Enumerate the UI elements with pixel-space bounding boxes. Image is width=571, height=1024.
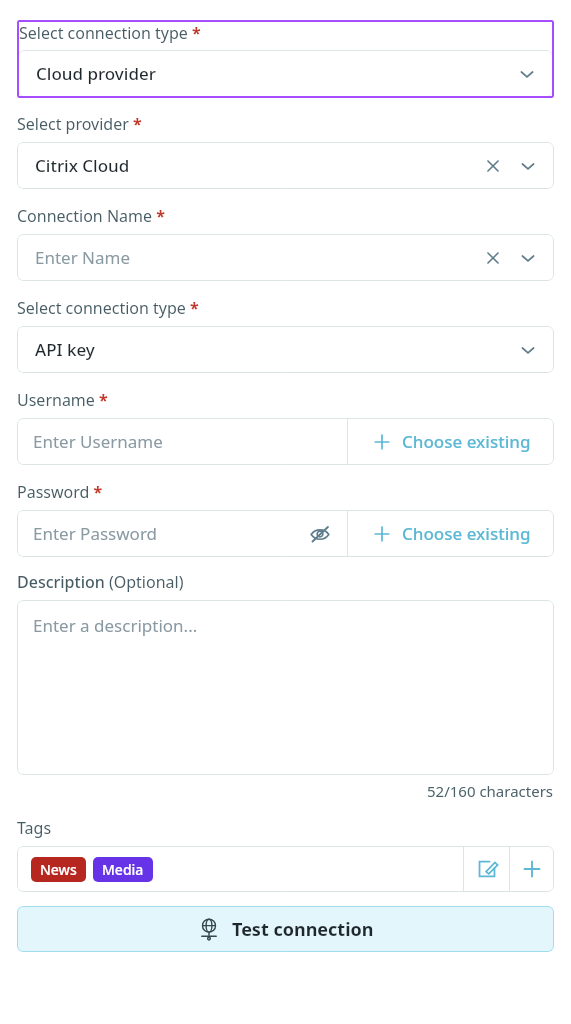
button[interactable]: Enter a description... [17, 600, 554, 775]
staticText: Test connection [232, 917, 374, 942]
staticText: Enter a description... [33, 614, 198, 637]
staticText: Choose existing [402, 430, 531, 453]
staticText: Select connection type * [17, 297, 199, 319]
staticText: Cloud provider [36, 62, 156, 85]
other: Open auth type [516, 338, 540, 362]
button[interactable]: Clear connection name [480, 245, 506, 271]
staticText: Tags [17, 817, 52, 839]
button[interactable]: Add tag [510, 846, 554, 892]
staticText: Password * [17, 481, 103, 503]
button[interactable]: Enter Name [17, 234, 554, 281]
button[interactable]: Show password [307, 521, 333, 547]
button[interactable]: Test connection [17, 906, 554, 952]
other: Open connection name [516, 246, 540, 270]
staticText: Username * [17, 389, 108, 411]
staticText: Select connection type * [19, 22, 201, 44]
staticText: API key [35, 338, 95, 361]
other: Open provider [516, 154, 540, 178]
staticText: Connection Name * [17, 205, 165, 227]
staticText: 52/160 characters [427, 781, 554, 801]
other: Open connection type [515, 62, 539, 86]
staticText: Description (Optional) [17, 571, 184, 593]
staticText: Select provider * [17, 113, 142, 135]
button[interactable]: News [31, 857, 86, 882]
staticText: Enter Password [33, 522, 158, 545]
staticText: Choose existing [402, 522, 531, 545]
button[interactable]: Media [93, 857, 153, 882]
button[interactable]: Choose existing [348, 418, 554, 465]
button[interactable]: Clear provider [480, 153, 506, 179]
button[interactable]: News [17, 846, 463, 892]
button[interactable]: Enter Username [17, 418, 347, 465]
button[interactable]: Cloud provider [18, 50, 553, 97]
staticText: News [40, 860, 77, 879]
staticText: Enter Username [33, 430, 163, 453]
button[interactable]: Edit tags [464, 846, 509, 892]
staticText: Enter Name [35, 246, 131, 269]
staticText: Media [102, 860, 144, 879]
button[interactable]: Citrix Cloud [17, 142, 554, 189]
button[interactable]: Choose existing [348, 510, 554, 557]
staticText: Citrix Cloud [35, 154, 130, 177]
button[interactable]: API key [17, 326, 554, 373]
button[interactable]: Enter Password [17, 510, 347, 557]
